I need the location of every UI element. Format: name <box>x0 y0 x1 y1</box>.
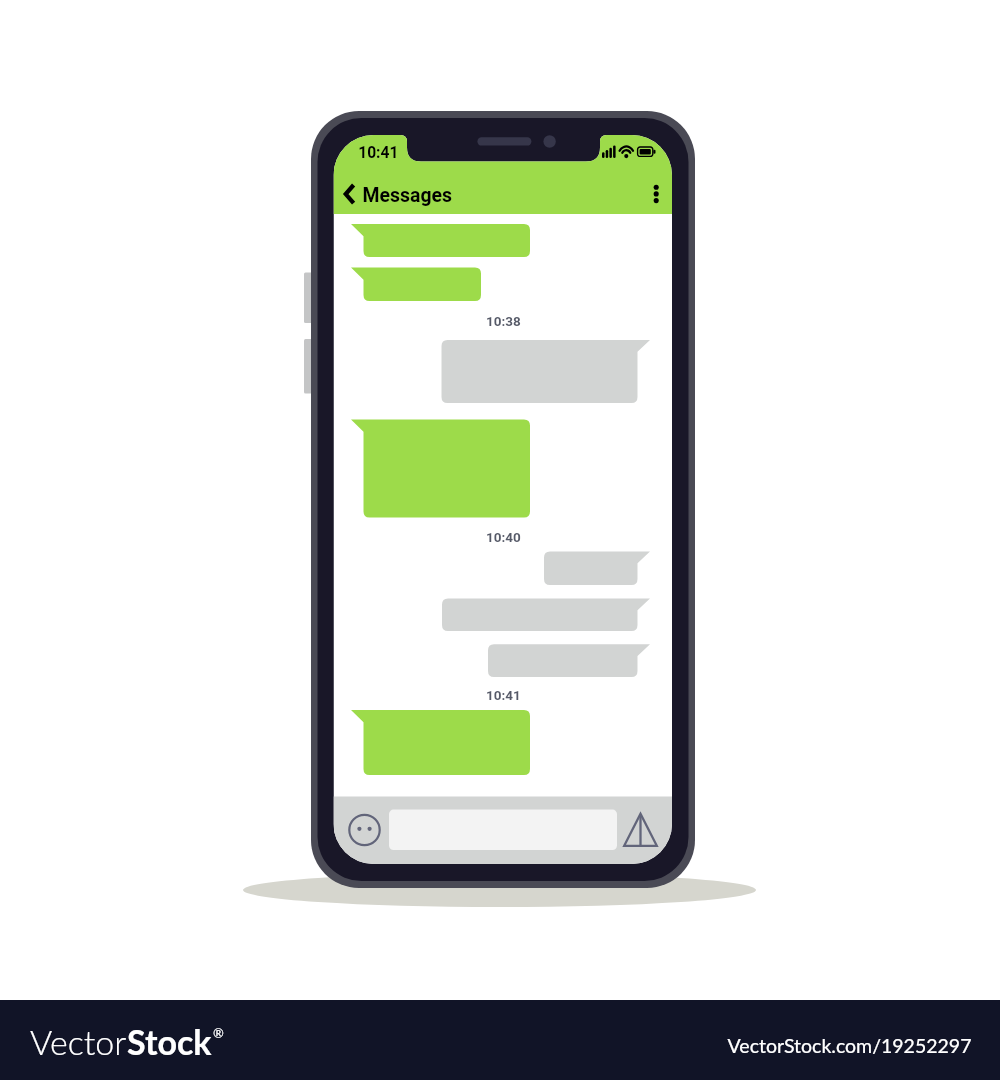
button[interactable]: Send <box>622 812 658 848</box>
button[interactable]: Back <box>342 180 366 206</box>
button[interactable]: Message input <box>388 810 618 849</box>
button[interactable]: Emoji <box>348 814 382 848</box>
button[interactable]: More options <box>646 180 668 206</box>
